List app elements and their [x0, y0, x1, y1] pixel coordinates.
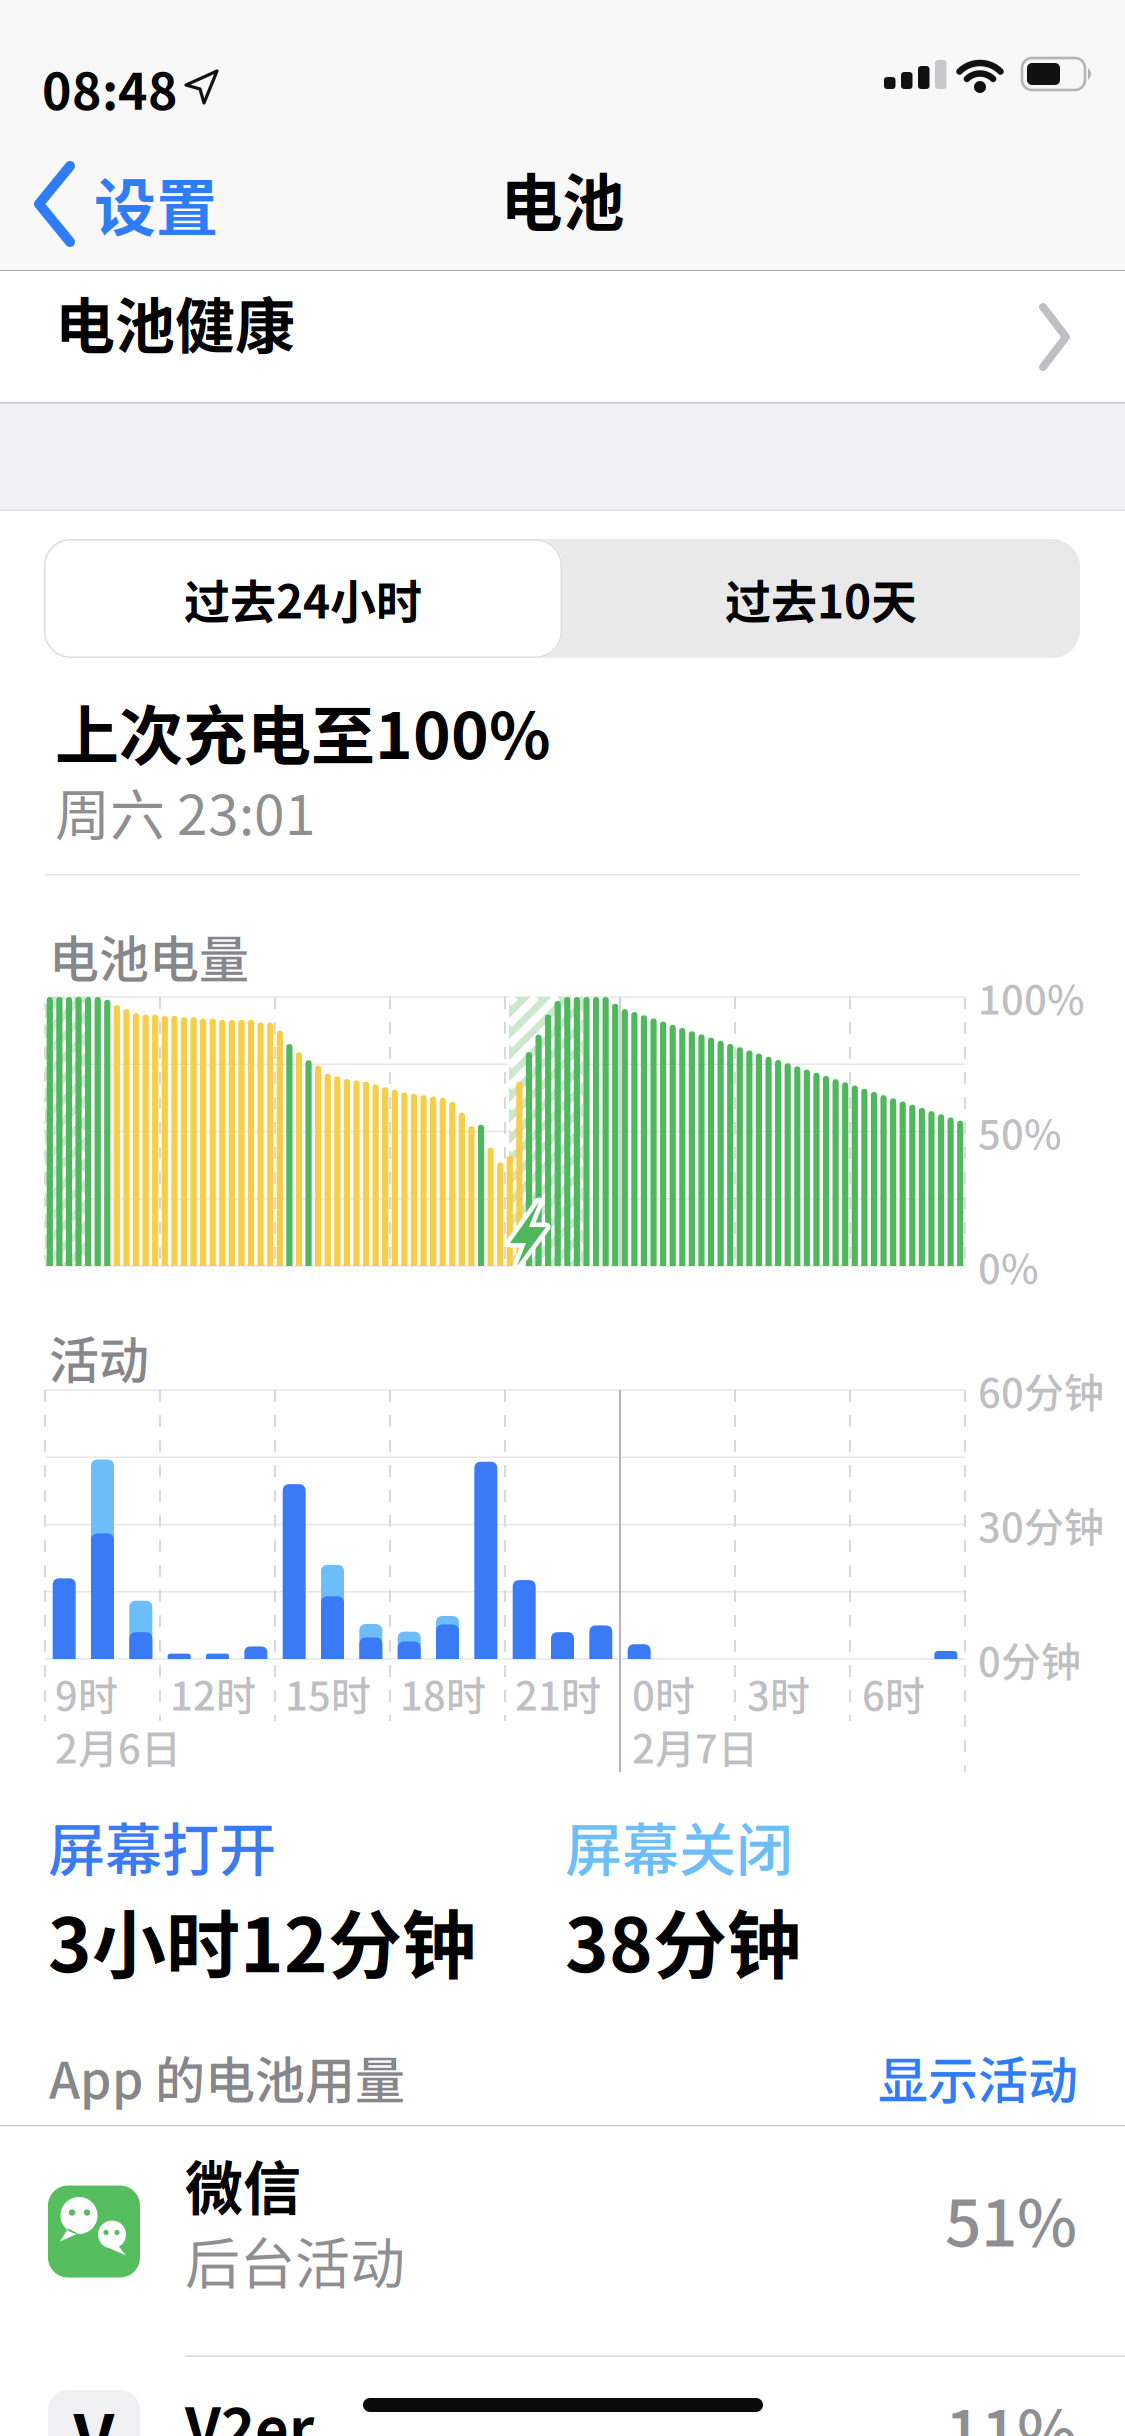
staticText: V2er — [185, 2383, 314, 2436]
button[interactable]: 设置 — [32, 159, 218, 249]
staticText: 38分钟 — [565, 1886, 801, 1994]
button[interactable]: V — [0, 2357, 1125, 2436]
button[interactable]: 过去24小时 — [44, 539, 562, 658]
staticText: 2月7日 — [632, 1717, 758, 1775]
staticText: 6时 — [862, 1664, 925, 1722]
staticText: 30分钟 — [978, 1495, 1104, 1553]
staticText: 15时 — [285, 1664, 371, 1722]
staticText: 9时 — [55, 1664, 118, 1722]
staticText: 过去10天 — [725, 565, 917, 632]
staticText: 3时 — [747, 1664, 810, 1722]
staticText: 设置 — [94, 159, 218, 249]
staticText: 过去24小时 — [184, 565, 422, 632]
staticText: 3小时12分钟 — [48, 1886, 476, 1994]
staticText: 50% — [978, 1102, 1062, 1160]
staticText: V — [73, 2386, 114, 2436]
staticText: 12时 — [170, 1664, 256, 1722]
staticText: 18时 — [400, 1664, 486, 1722]
staticText: 屏幕关闭 — [565, 1805, 793, 1887]
staticText: App 的电池用量 — [49, 2041, 405, 2113]
staticText: 0时 — [632, 1664, 695, 1722]
staticText: 0分钟 — [978, 1630, 1081, 1688]
staticText: 上次充电至100% — [55, 685, 551, 777]
staticText: 电池电量 — [49, 920, 249, 992]
staticText: 电池 — [500, 154, 624, 244]
staticText: 屏幕打开 — [48, 1805, 276, 1887]
staticText: 0% — [978, 1237, 1039, 1295]
button[interactable]: 显示活动 — [878, 2041, 1078, 2113]
staticText: 微信 — [185, 2142, 301, 2226]
staticText: 60分钟 — [978, 1361, 1104, 1419]
button[interactable]: 微信 — [0, 2126, 1125, 2356]
button[interactable]: 过去10天 — [562, 539, 1080, 658]
staticText: 周六 23:01 — [55, 771, 316, 851]
staticText: 08:48 — [42, 52, 178, 124]
staticText: 显示活动 — [878, 2041, 1078, 2113]
staticText: 电池健康 — [55, 279, 295, 365]
staticText: 11% — [945, 2383, 1077, 2436]
staticText: 51% — [945, 2172, 1077, 2265]
button[interactable]: 电池健康 — [0, 271, 1125, 402]
staticText: 活动 — [49, 1321, 149, 1393]
staticText: 100% — [978, 968, 1085, 1026]
staticText: 2月6日 — [55, 1717, 181, 1775]
staticText: 21时 — [515, 1664, 601, 1722]
staticText: 后台活动 — [185, 2220, 405, 2299]
